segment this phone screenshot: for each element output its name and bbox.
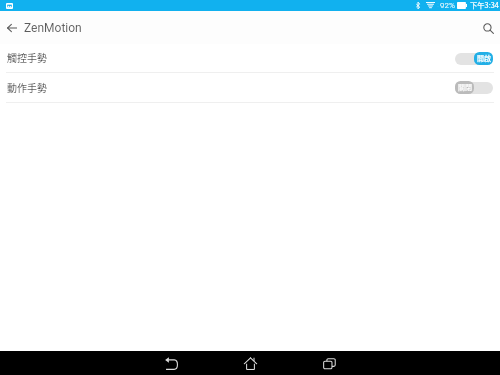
button[interactable]: 關閉: [455, 81, 493, 94]
staticText: 下午3:34: [470, 0, 499, 11]
staticText: 開啟: [477, 53, 491, 63]
button[interactable]: Back: [159, 351, 183, 375]
staticText: ZenMotion: [24, 21, 82, 35]
button[interactable]: Home: [238, 351, 262, 375]
button[interactable]: Search: [476, 16, 500, 40]
button[interactable]: 動作手勢: [0, 73, 500, 102]
staticText: 關閉: [458, 82, 472, 92]
button[interactable]: 觸控手勢: [0, 44, 500, 72]
button[interactable]: 開啟: [455, 52, 493, 65]
staticText: 動作手勢: [7, 80, 47, 94]
staticText: 92%: [440, 1, 455, 10]
staticText: 觸控手勢: [7, 50, 47, 64]
button[interactable]: Back: [0, 17, 22, 39]
button[interactable]: Recent apps: [317, 351, 341, 375]
